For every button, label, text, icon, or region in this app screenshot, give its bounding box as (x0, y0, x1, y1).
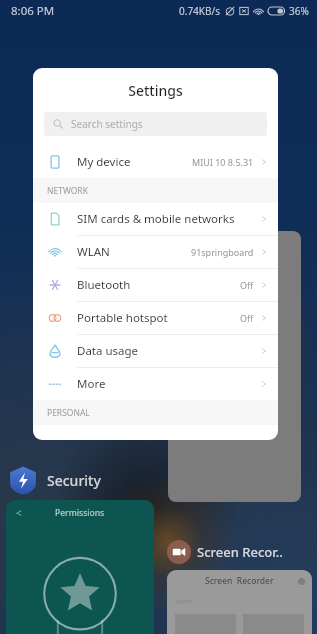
staticText: Portable hotspot (77, 310, 168, 326)
staticText: 06/07 (176, 598, 192, 606)
staticText: MIUI 10 8.5.31 (192, 156, 254, 168)
staticText: More (77, 376, 106, 392)
staticText: < (16, 506, 22, 520)
staticText: 0.74KB/s (179, 4, 221, 18)
staticText: My device (77, 154, 131, 170)
staticText: PERSONAL (47, 407, 90, 419)
other: Screen Recorder app (167, 540, 191, 564)
button[interactable]: Screen Recorder app (167, 540, 283, 564)
staticText: Security (47, 471, 101, 490)
button[interactable]: SIM cards & mobile networks (33, 203, 278, 235)
staticText: Settings (128, 81, 183, 100)
button[interactable]: Security app (6, 463, 101, 497)
button[interactable]: Search settings (44, 112, 267, 136)
staticText: 36% (289, 4, 309, 18)
button[interactable]: < (6, 500, 154, 634)
button[interactable]: My device (33, 146, 278, 178)
staticText: Search settings (71, 117, 143, 131)
other: Security app (6, 463, 40, 497)
staticText: NETWORK (47, 185, 88, 197)
button[interactable]: Screen Recorder (167, 570, 312, 634)
staticText: SIM cards & mobile networks (77, 211, 235, 227)
button[interactable]: WLAN (33, 236, 278, 268)
button[interactable]: More (33, 368, 278, 400)
staticText: Off (240, 279, 254, 291)
staticText: Data usage (77, 343, 139, 359)
button[interactable]: Portable hotspot (33, 302, 278, 334)
staticText: 8:06 PM (11, 3, 55, 19)
button[interactable]: Bluetooth (33, 269, 278, 301)
staticText: Screen Recor.. (197, 543, 283, 561)
staticText: Bluetooth (77, 277, 131, 293)
button[interactable]: Data usage (33, 335, 278, 367)
staticText: Screen Recorder (205, 575, 274, 587)
button[interactable] (168, 231, 301, 502)
staticText: Permissions (55, 507, 105, 519)
staticText: WLAN (77, 244, 110, 260)
staticText: Off (240, 312, 254, 324)
staticText: 91springboard (191, 246, 254, 258)
